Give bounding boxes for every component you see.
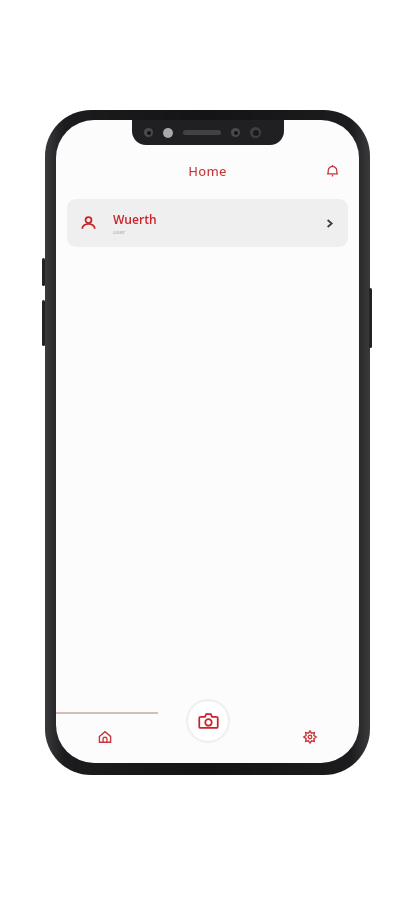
staticText: Home [188, 162, 227, 180]
button[interactable]: Wuerth [67, 199, 348, 247]
button[interactable]: Notifications [317, 156, 347, 186]
button[interactable]: Settings [295, 722, 325, 752]
staticText: Wuerth [113, 211, 157, 227]
button[interactable]: Home [90, 722, 120, 752]
button[interactable]: Camera [188, 701, 228, 741]
staticText: user [113, 228, 126, 236]
